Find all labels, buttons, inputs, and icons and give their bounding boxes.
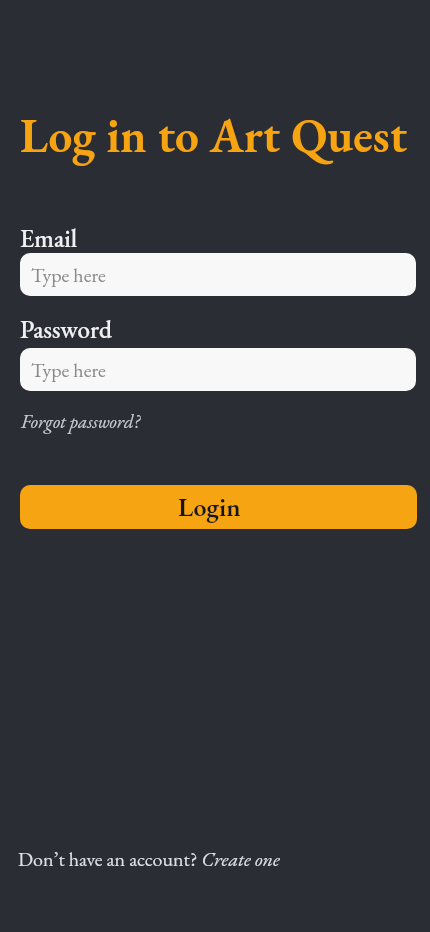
button[interactable]: Type here [20,253,416,296]
staticText: Don’t have an account? Create one [18,846,280,872]
button[interactable]: Login [20,485,417,529]
staticText: Type here [31,357,106,383]
staticText: Password [20,313,113,346]
button[interactable]: Don’t have an account? Create one [18,846,280,872]
button[interactable]: Type here [20,348,416,391]
staticText: Email [20,222,78,255]
staticText: Type here [31,262,106,288]
button[interactable]: Forgot password? [21,409,140,434]
staticText: Log in to Art Quest [20,104,408,166]
staticText: Login [178,490,241,524]
